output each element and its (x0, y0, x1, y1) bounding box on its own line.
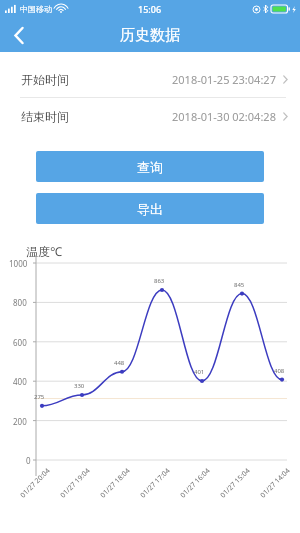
staticText: 2018-01-25 23:04:27 (172, 72, 276, 87)
staticText: 15:06 (138, 3, 162, 15)
staticText: 330 (74, 382, 85, 390)
staticText: 01/27 18:04 (98, 466, 133, 500)
button[interactable]: 结束时间 (0, 98, 300, 134)
staticText: 导出 (137, 201, 163, 217)
staticText: 2018-01-30 02:04:28 (172, 109, 276, 124)
staticText: 01/27 15:04 (218, 466, 253, 500)
staticText: 1000 (9, 258, 28, 269)
staticText: 600 (13, 337, 27, 348)
staticText: 0 (26, 455, 31, 466)
staticText: 温度℃ (26, 243, 62, 259)
button[interactable]: 查询 (36, 151, 264, 182)
staticText: 200 (13, 416, 27, 427)
staticText: 01/27 14:04 (258, 466, 293, 500)
button[interactable]: 导出 (36, 193, 264, 224)
staticText: 中国移动 (20, 4, 52, 14)
staticText: 401 (194, 368, 205, 376)
staticText: 863 (154, 277, 165, 285)
staticText: 历史数据 (120, 26, 180, 45)
button[interactable]: Back (0, 18, 38, 52)
staticText: 845 (234, 281, 245, 289)
staticText: 开始时间 (21, 72, 69, 87)
staticText: 01/27 17:04 (138, 466, 173, 500)
button[interactable]: 开始时间 (0, 61, 300, 97)
staticText: 01/27 19:04 (58, 466, 93, 500)
staticText: 400 (13, 376, 27, 387)
staticText: 01/27 16:04 (178, 466, 213, 500)
staticText: 结束时间 (21, 109, 69, 124)
staticText: 01/27 20:04 (18, 466, 53, 500)
staticText: 800 (13, 297, 27, 308)
staticText: 275 (34, 393, 45, 401)
staticText: 查询 (137, 159, 163, 175)
staticText: 408 (274, 367, 285, 375)
staticText: 448 (114, 359, 125, 367)
